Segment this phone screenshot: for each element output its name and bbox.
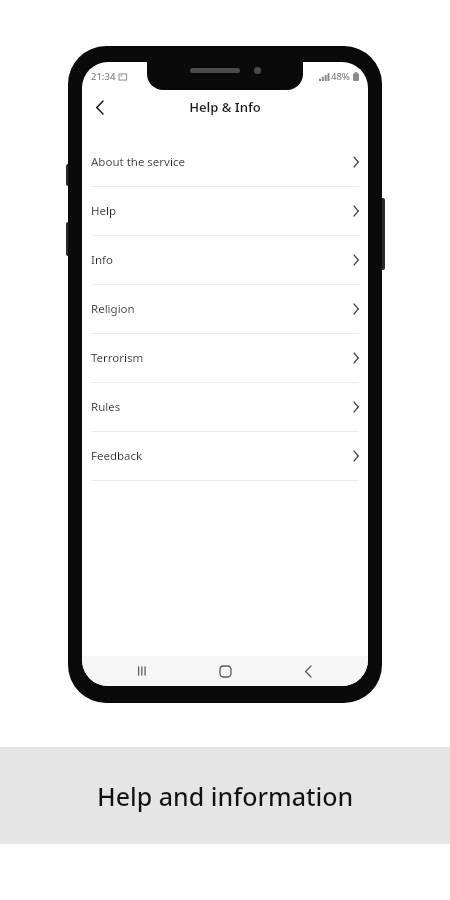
staticText: Help & Info: [189, 98, 261, 116]
staticText: About the service: [91, 154, 185, 170]
button[interactable]: Back: [82, 90, 116, 124]
button[interactable]: Religion: [82, 285, 368, 333]
staticText: Help: [91, 203, 117, 219]
staticText: Info: [91, 252, 113, 268]
staticText: Feedback: [91, 448, 143, 464]
staticText: Rules: [91, 399, 121, 415]
button[interactable]: Help: [82, 187, 368, 235]
button[interactable]: Feedback: [82, 432, 368, 480]
staticText: 21:34: [91, 70, 116, 83]
button[interactable]: Home: [202, 656, 248, 686]
button[interactable]: Terrorism: [82, 334, 368, 382]
staticText: Terrorism: [91, 350, 144, 366]
button[interactable]: Back: [285, 656, 331, 686]
button[interactable]: Info: [82, 236, 368, 284]
staticText: Religion: [91, 301, 135, 317]
button[interactable]: About the service: [82, 138, 368, 186]
staticText: 48%: [331, 70, 350, 83]
staticText: Help and information: [97, 779, 354, 813]
button[interactable]: Rules: [82, 383, 368, 431]
button[interactable]: Recent apps: [119, 656, 165, 686]
